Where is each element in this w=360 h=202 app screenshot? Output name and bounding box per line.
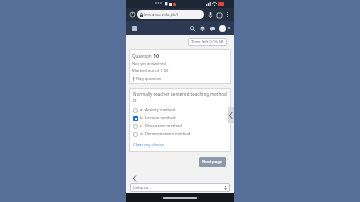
staticText: a.	[140, 107, 144, 113]
button[interactable]: c.	[133, 122, 227, 130]
staticText: Demonstration method	[145, 131, 191, 137]
staticText: c.	[140, 123, 144, 129]
button[interactable]: Voice search	[206, 11, 214, 19]
button[interactable]: More options	[224, 11, 231, 18]
button[interactable]: Jump to...	[130, 183, 230, 192]
staticText: Jump to...	[133, 185, 152, 191]
staticText: Clear my choice	[133, 142, 164, 148]
button[interactable]: a.	[133, 106, 227, 114]
staticText: b.	[140, 115, 144, 121]
button[interactable]: Messages	[208, 24, 217, 33]
button[interactable]: Notifications	[198, 24, 207, 33]
staticText: Normally teacher centered teaching metho…	[133, 91, 227, 103]
staticText: Question	[132, 53, 153, 59]
button[interactable]: Menu	[130, 24, 139, 33]
staticText: Discussion method	[145, 123, 182, 129]
button[interactable]: Home gesture	[163, 197, 197, 199]
button[interactable]: Time left 0:16:58	[188, 38, 227, 46]
staticText: d.	[140, 131, 144, 137]
button[interactable]: Clear my choice	[133, 141, 164, 149]
button[interactable]: d.	[133, 130, 227, 138]
staticText: Next page	[202, 159, 223, 165]
staticText: Not yet answered	[132, 61, 166, 67]
button[interactable]: Site information	[129, 11, 136, 18]
staticText: Flag question	[136, 76, 162, 81]
button[interactable]: Next page	[199, 157, 226, 167]
staticText: lms.aiou.edu.pk/l	[144, 12, 178, 18]
button[interactable]: Tabs	[215, 11, 223, 19]
button[interactable]: Search	[188, 24, 197, 33]
staticText: Lecture method	[145, 115, 176, 121]
staticText: Time left 0:16:58	[191, 39, 224, 45]
button[interactable]: Back	[129, 173, 139, 183]
button[interactable]: Collapse panel	[228, 107, 234, 123]
staticText: Marked out of 1.00	[132, 68, 169, 74]
button[interactable]: Profile	[218, 24, 227, 33]
staticText: 10	[153, 52, 160, 59]
button[interactable]: b.	[133, 114, 227, 122]
staticText: Activity method	[145, 107, 176, 113]
button[interactable]: lms.aiou.edu.pk/l	[137, 10, 204, 19]
